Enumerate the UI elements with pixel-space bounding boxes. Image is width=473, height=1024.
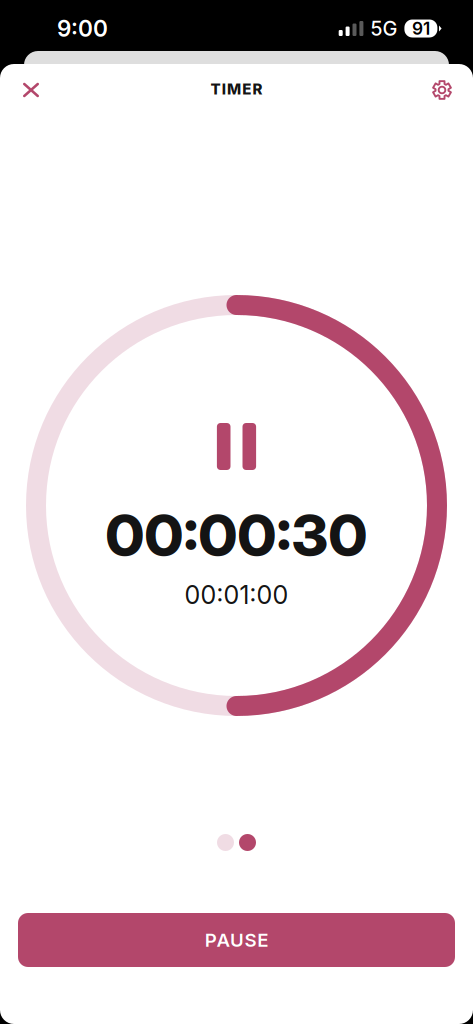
staticText: 00:00:30 xyxy=(105,500,367,570)
staticText: TIMER xyxy=(210,80,263,98)
staticText: 9:00 xyxy=(57,15,108,42)
button[interactable]: PAUSE xyxy=(18,913,455,967)
staticText: 5G xyxy=(370,16,397,41)
staticText: PAUSE xyxy=(205,929,268,951)
staticText: 91 xyxy=(412,18,430,39)
staticText: 00:01:00 xyxy=(184,580,288,610)
